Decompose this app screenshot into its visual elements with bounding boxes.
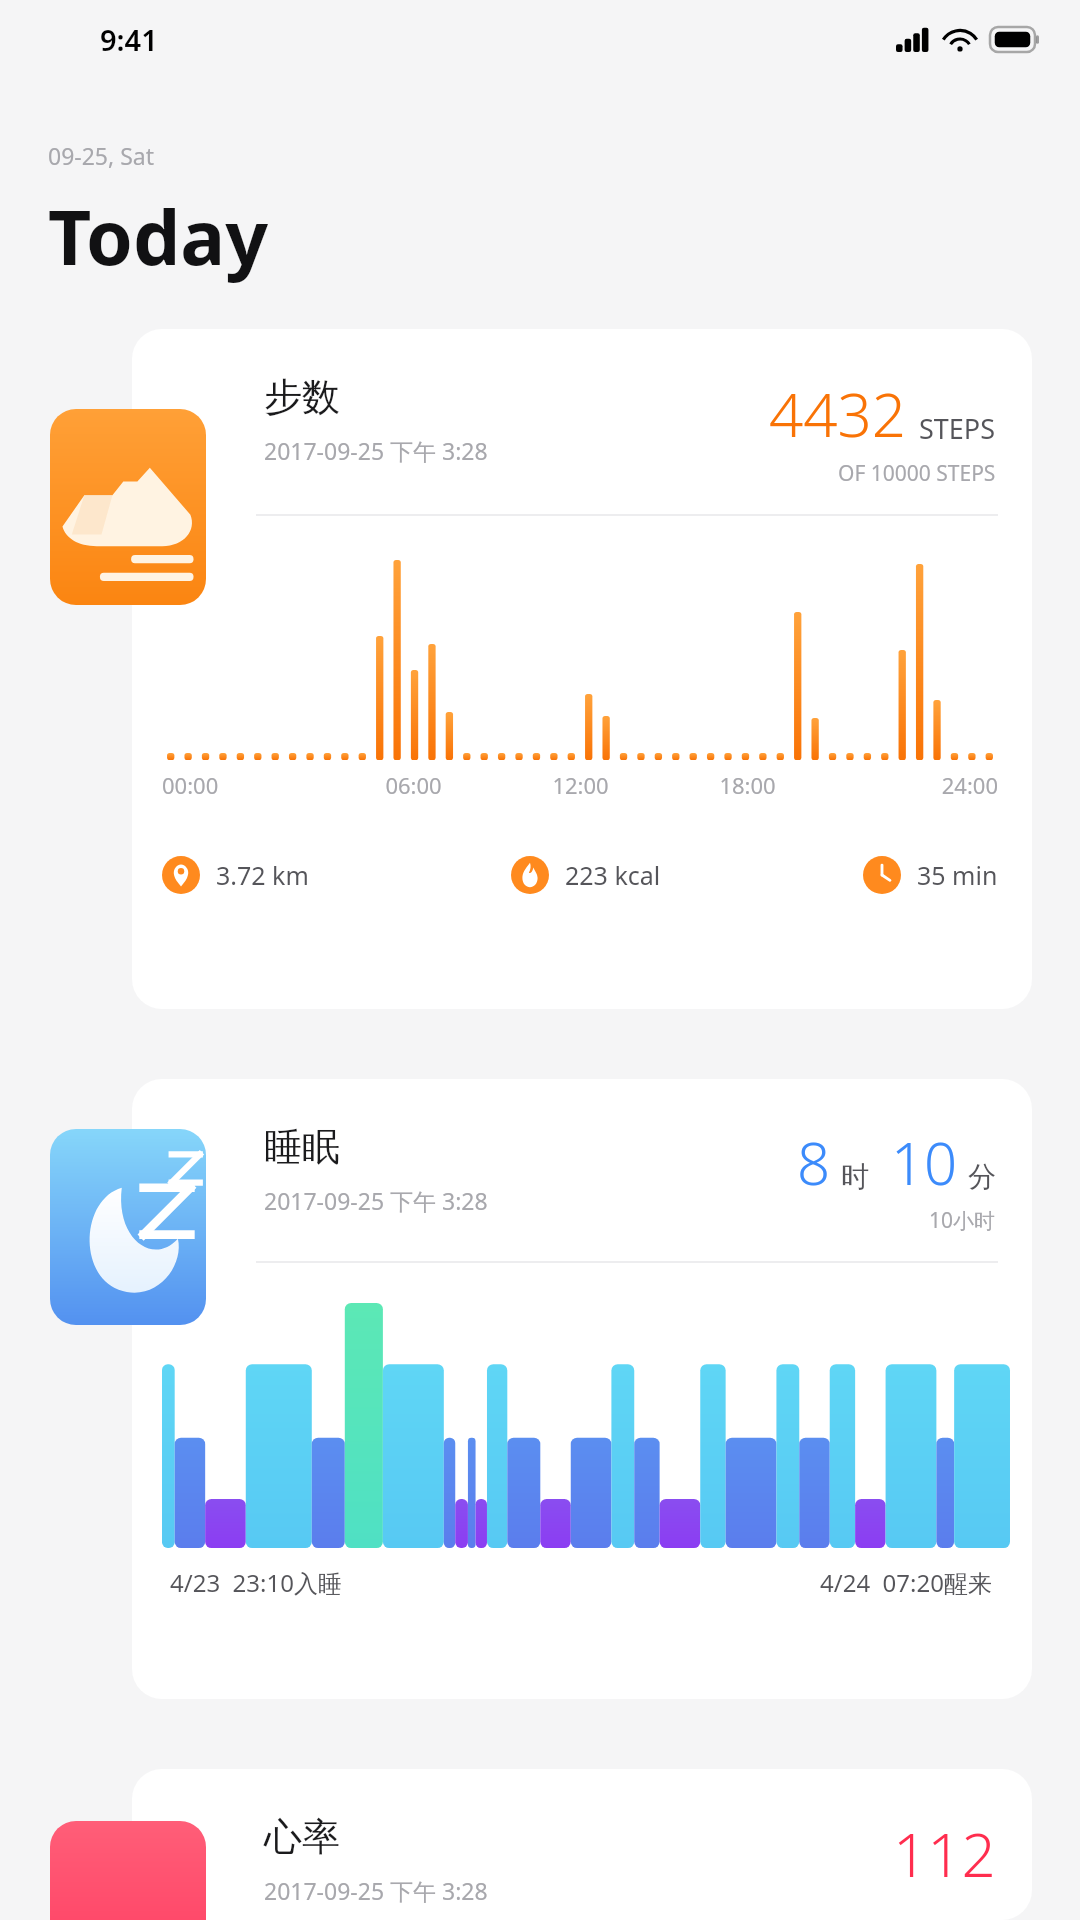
staticText: 睡眠 — [264, 1123, 340, 1171]
staticText: 06:00 — [330, 770, 497, 800]
staticText: 步数 — [264, 373, 340, 421]
staticText: 分 — [968, 1159, 996, 1194]
staticText: 223 kcal — [565, 858, 661, 892]
button[interactable] — [132, 329, 1032, 1009]
staticText: 35 min — [917, 858, 998, 892]
staticText: 4/23 23:10入睡 — [170, 1566, 342, 1599]
staticText: 3.72 km — [216, 858, 309, 892]
staticText: Today — [48, 185, 269, 287]
staticText: 2017-09-25 下午 3:28 — [264, 435, 488, 466]
staticText: 心率 — [264, 1813, 340, 1861]
button[interactable]: Sleep — [50, 1129, 206, 1325]
staticText: 时 — [841, 1159, 869, 1194]
staticText: 10 — [891, 1123, 958, 1202]
button[interactable]: 35 min — [863, 856, 998, 894]
staticText: 12:00 — [497, 770, 664, 800]
staticText: 2017-09-25 下午 3:28 — [264, 1185, 488, 1216]
staticText: 9:41 — [100, 20, 158, 59]
staticText: 112 — [893, 1813, 996, 1895]
staticText: 4/24 07:20醒来 — [820, 1566, 992, 1599]
staticText: STEPS — [919, 410, 996, 447]
staticText: 09-25, Sat — [48, 140, 155, 171]
button[interactable]: Heart rate — [50, 1821, 206, 1920]
staticText: 24:00 — [831, 770, 998, 800]
button[interactable] — [132, 1769, 1032, 1920]
button[interactable]: 223 kcal — [511, 856, 661, 894]
staticText: 8 — [797, 1123, 831, 1202]
staticText: 2017-09-25 下午 3:28 — [264, 1875, 488, 1906]
staticText: 00:00 — [162, 770, 330, 800]
button[interactable]: Steps — [50, 409, 206, 605]
staticText: 10小时 — [929, 1206, 996, 1235]
staticText: 18:00 — [664, 770, 831, 800]
button[interactable] — [132, 1079, 1032, 1699]
staticText: OF 10000 STEPS — [838, 459, 996, 488]
button[interactable]: 3.72 km — [162, 856, 309, 894]
staticText: 4432 — [769, 373, 907, 455]
